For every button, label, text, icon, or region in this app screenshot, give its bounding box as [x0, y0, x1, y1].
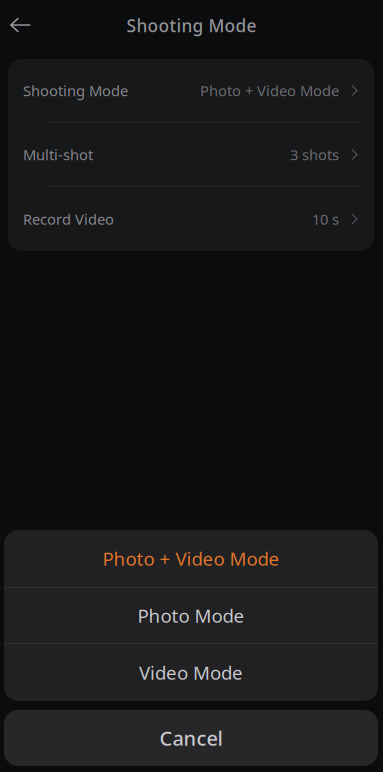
staticText: Multi-shot	[23, 145, 93, 164]
staticText: Cancel	[159, 725, 222, 751]
staticText: Photo Mode	[137, 603, 244, 628]
button[interactable]: Photo + Video Mode	[4, 530, 378, 587]
staticText: Video Mode	[139, 660, 243, 685]
button[interactable]: Cancel	[4, 710, 378, 766]
button[interactable]: Photo Mode	[4, 588, 378, 643]
button[interactable]: Video Mode	[4, 644, 378, 701]
staticText: Record Video	[23, 209, 114, 229]
staticText: 10 s	[312, 209, 339, 229]
button[interactable]: Back	[0, 4, 41, 45]
button[interactable]: Record Video	[8, 187, 374, 251]
staticText: Photo + Video Mode	[200, 81, 339, 100]
staticText: Photo + Video Mode	[102, 546, 279, 571]
button[interactable]: Shooting Mode	[8, 59, 374, 122]
staticText: Shooting Mode	[23, 81, 128, 100]
button[interactable]: Multi-shot	[8, 123, 374, 186]
staticText: Shooting Mode	[126, 14, 256, 37]
staticText: 3 shots	[290, 145, 339, 164]
